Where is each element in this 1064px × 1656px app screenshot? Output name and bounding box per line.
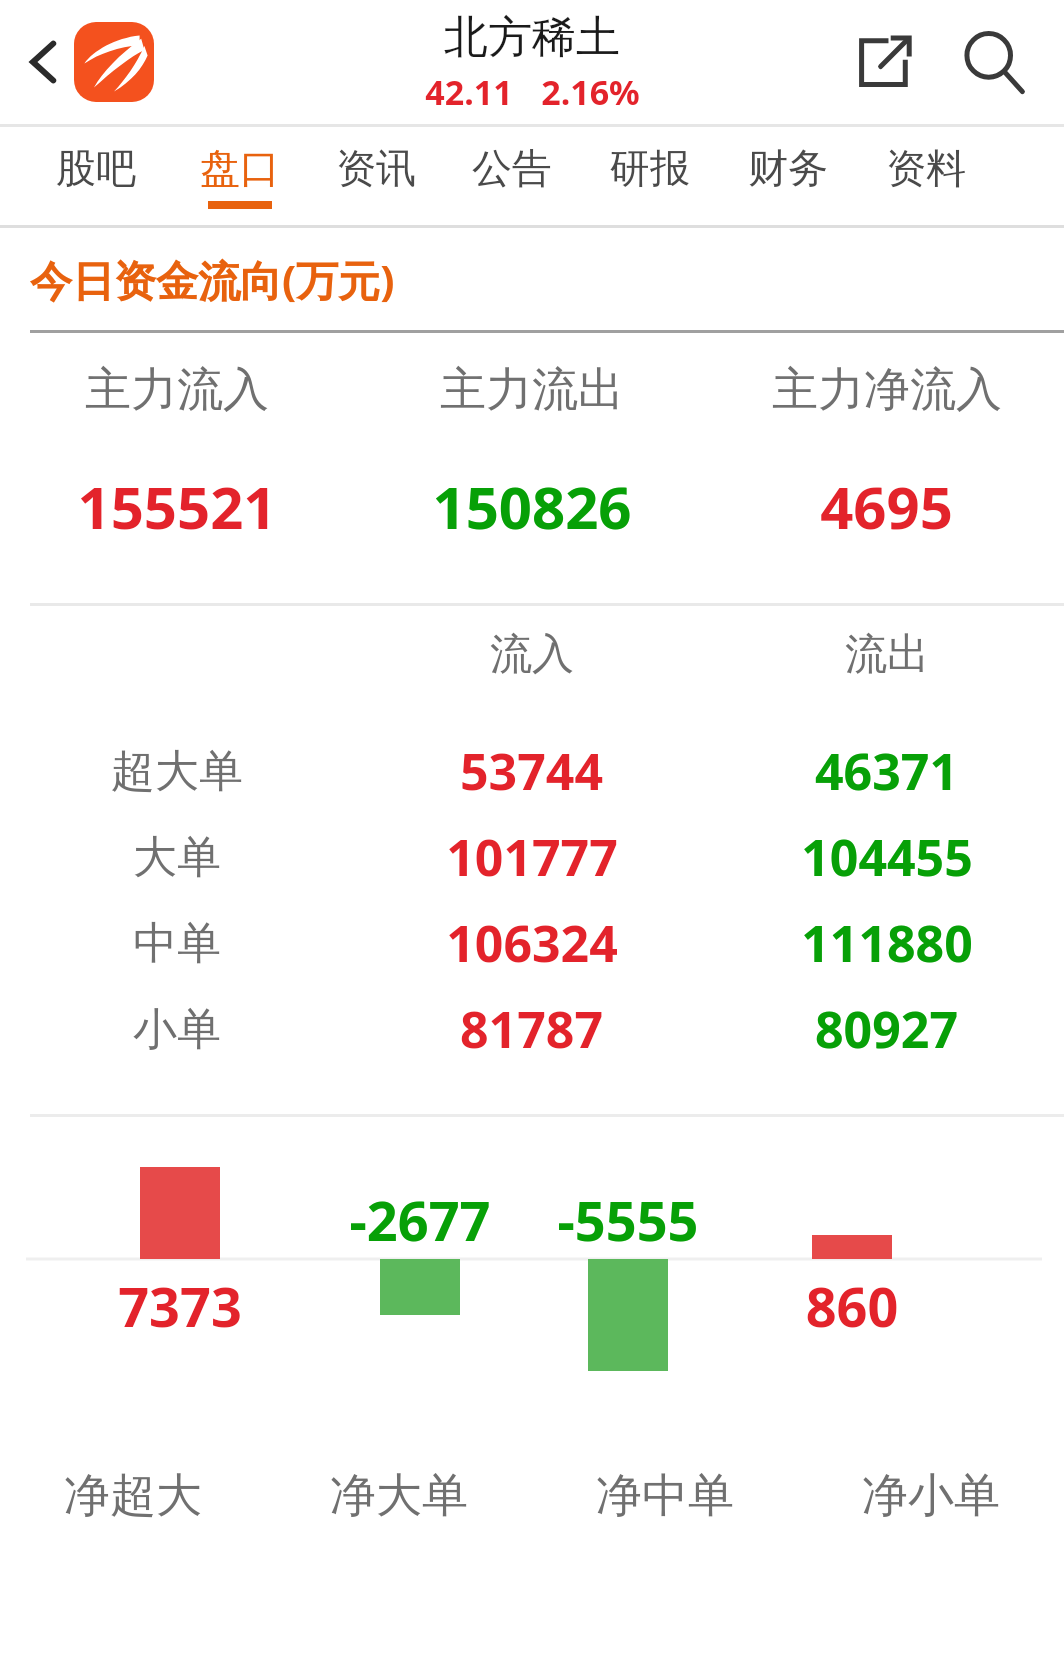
- button[interactable]: 研报: [583, 127, 717, 225]
- button[interactable]: 资讯: [309, 127, 443, 225]
- staticText: 盘口: [200, 143, 280, 193]
- staticText: 101777: [446, 823, 618, 891]
- staticText: 80927: [815, 995, 958, 1063]
- staticText: 主力净流入: [772, 361, 1002, 419]
- button[interactable]: 主力流入: [0, 333, 354, 603]
- staticText: 流出: [845, 628, 929, 681]
- staticText: 53744: [460, 737, 603, 805]
- staticText: 小单: [133, 1002, 221, 1057]
- button[interactable]: 净大单: [266, 1467, 532, 1525]
- staticText: 155521: [77, 467, 277, 546]
- button[interactable]: 公告: [445, 127, 579, 225]
- button[interactable]: 股吧: [29, 127, 163, 225]
- staticText: 860: [788, 1269, 916, 1343]
- button[interactable]: Share: [842, 20, 926, 104]
- staticText: 大单: [133, 830, 221, 885]
- staticText: 资讯: [336, 143, 416, 193]
- staticText: 净中单: [596, 1467, 734, 1525]
- button[interactable]: 超大单: [0, 728, 1064, 814]
- staticText: 42.11: [425, 69, 513, 115]
- staticText: 股吧: [56, 143, 136, 193]
- staticText: 北方稀土: [444, 10, 620, 65]
- staticText: 资料: [886, 143, 966, 193]
- button[interactable]: App logo: [74, 22, 154, 102]
- staticText: 104455: [801, 823, 973, 891]
- button[interactable]: 主力净流入: [709, 333, 1064, 603]
- button[interactable]: 盘口: [173, 127, 307, 225]
- button[interactable]: 资料: [859, 127, 993, 225]
- staticText: 7373: [104, 1269, 256, 1343]
- button[interactable]: 大单: [0, 814, 1064, 900]
- button[interactable]: Search: [946, 14, 1042, 110]
- staticText: 净超大: [64, 1467, 202, 1525]
- staticText: 净大单: [330, 1467, 468, 1525]
- button[interactable]: 财务: [721, 127, 855, 225]
- staticText: 2.16%: [541, 69, 640, 115]
- button[interactable]: Back: [8, 26, 80, 98]
- staticText: 今日资金流向(万元): [30, 251, 395, 308]
- button[interactable]: 净中单: [532, 1467, 798, 1525]
- staticText: -5555: [530, 1183, 726, 1257]
- staticText: 主力流出: [440, 361, 624, 419]
- staticText: 46371: [815, 737, 958, 805]
- staticText: 主力流入: [85, 361, 269, 419]
- staticText: 106324: [446, 909, 618, 977]
- staticText: -2677: [322, 1183, 518, 1257]
- staticText: 公告: [472, 143, 552, 193]
- staticText: 研报: [610, 143, 690, 193]
- button[interactable]: 主力流出: [354, 333, 709, 603]
- staticText: 超大单: [111, 744, 243, 799]
- staticText: 150826: [432, 467, 632, 546]
- staticText: 111880: [801, 909, 973, 977]
- button[interactable]: 小单: [0, 986, 1064, 1072]
- button[interactable]: 净超大: [0, 1467, 266, 1525]
- staticText: 流入: [490, 628, 574, 681]
- staticText: 净小单: [862, 1467, 1000, 1525]
- staticText: 4695: [820, 467, 953, 546]
- button[interactable]: 净小单: [798, 1467, 1064, 1525]
- staticText: 81787: [460, 995, 603, 1063]
- staticText: 中单: [133, 916, 221, 971]
- button[interactable]: 中单: [0, 900, 1064, 986]
- staticText: 财务: [748, 143, 828, 193]
